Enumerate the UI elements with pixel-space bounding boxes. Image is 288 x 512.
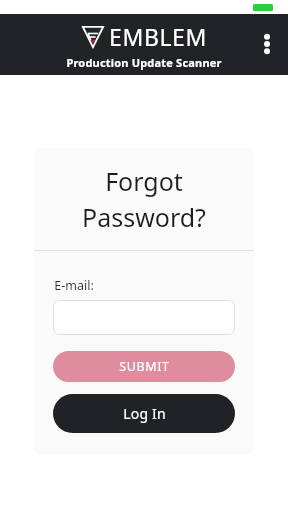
staticText: Log In (123, 404, 166, 423)
staticText: EMBLEM (109, 21, 207, 52)
staticText: Production Update Scanner (66, 55, 222, 70)
button[interactable]: E-mail input (53, 300, 235, 335)
staticText: Forgot (105, 164, 183, 198)
staticText: SUBMIT (119, 358, 170, 375)
staticText: E-mail: (54, 277, 94, 294)
staticText: Password? (82, 200, 206, 234)
button[interactable]: Log In (53, 394, 235, 433)
button[interactable]: SUBMIT (53, 351, 235, 382)
button[interactable]: More options (251, 28, 283, 60)
